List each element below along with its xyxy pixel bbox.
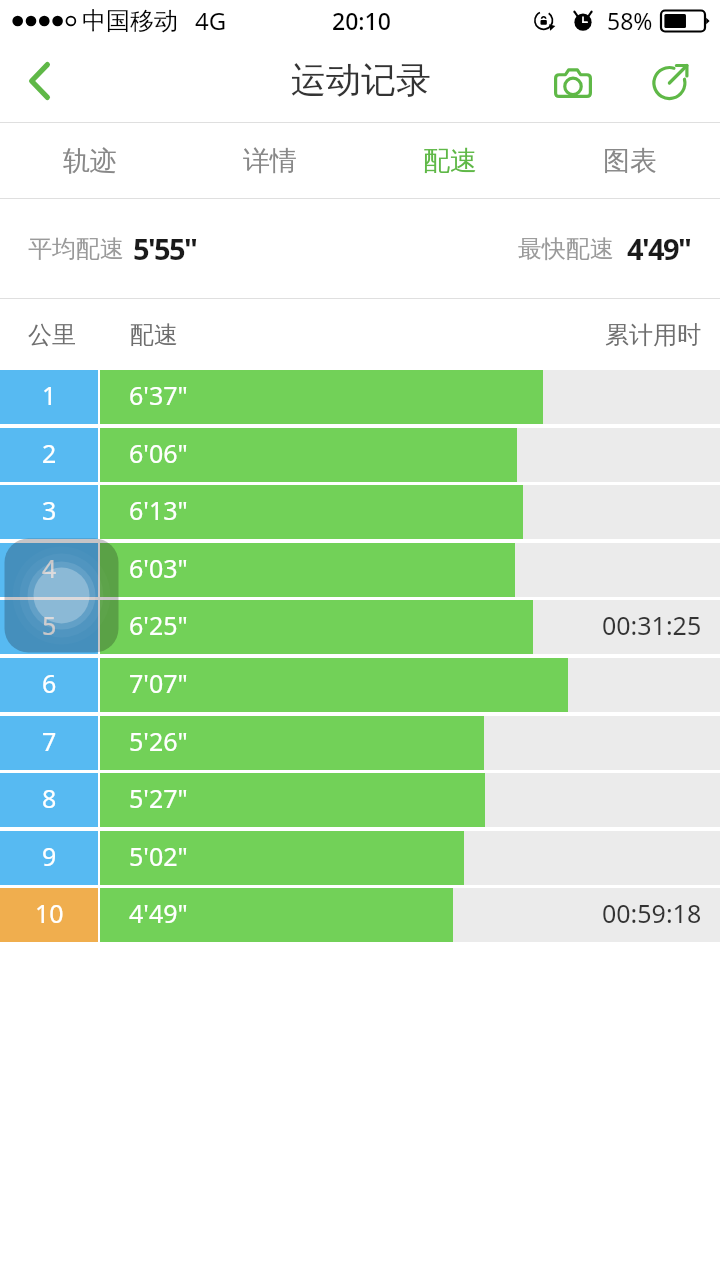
staticText: 9 — [42, 839, 57, 873]
staticText: 图表 — [603, 144, 657, 178]
staticText: 10 — [35, 896, 64, 930]
staticText: 4 — [42, 551, 57, 585]
button[interactable]: 8 — [0, 773, 720, 827]
staticText: 6'37" — [129, 378, 188, 412]
button[interactable]: 详情 — [180, 123, 360, 198]
staticText: 5'27" — [129, 781, 188, 815]
staticText: 5'26" — [129, 724, 188, 758]
staticText: 20:10 — [332, 5, 391, 36]
staticText: 1 — [42, 378, 57, 412]
staticText: 58% — [607, 5, 653, 36]
button[interactable]: 1 — [0, 370, 720, 424]
staticText: 公里 — [28, 320, 76, 350]
button[interactable]: 3 — [0, 485, 720, 539]
staticText: 配速 — [423, 144, 477, 178]
staticText: 轨迹 — [63, 144, 117, 178]
staticText: 6'06" — [129, 436, 188, 470]
staticText: 4'49" — [627, 229, 691, 268]
staticText: 平均配速 — [28, 234, 124, 264]
button[interactable]: 5 — [0, 600, 720, 654]
staticText: 5'55" — [133, 229, 197, 268]
staticText: 详情 — [243, 144, 297, 178]
button[interactable]: 4 — [0, 543, 720, 597]
staticText: 6'25" — [129, 608, 188, 642]
staticText: 5 — [42, 608, 57, 642]
button[interactable]: 轨迹 — [0, 123, 180, 198]
staticText: 4G — [195, 4, 227, 37]
staticText: 6'13" — [129, 493, 188, 527]
button[interactable]: 2 — [0, 428, 720, 482]
staticText: 5'02" — [129, 839, 188, 873]
staticText: 运动记录 — [291, 58, 431, 102]
staticText: 4'49" — [129, 896, 188, 930]
staticText: 6 — [42, 666, 57, 700]
staticText: 7'07" — [129, 666, 188, 700]
button[interactable]: 9 — [0, 831, 720, 885]
staticText: 6'03" — [129, 551, 188, 585]
button[interactable]: Share — [638, 42, 710, 124]
button[interactable]: Camera — [537, 41, 609, 123]
staticText: 00:31:25 — [602, 608, 702, 642]
staticText: 00:59:18 — [602, 896, 702, 930]
button[interactable]: Back — [8, 40, 70, 122]
button[interactable]: 配速 — [360, 123, 540, 198]
button[interactable]: 6 — [0, 658, 720, 712]
staticText: 累计用时 — [605, 320, 701, 350]
button[interactable]: 10 — [0, 888, 720, 942]
staticText: 最快配速 — [518, 234, 614, 264]
staticText: 配速 — [130, 320, 178, 350]
button[interactable]: 图表 — [540, 123, 720, 198]
staticText: 3 — [42, 493, 57, 527]
staticText: 中国移动 — [82, 6, 178, 36]
staticText: 7 — [42, 724, 57, 758]
button[interactable]: 7 — [0, 716, 720, 770]
staticText: 8 — [42, 781, 57, 815]
staticText: 2 — [42, 436, 57, 470]
